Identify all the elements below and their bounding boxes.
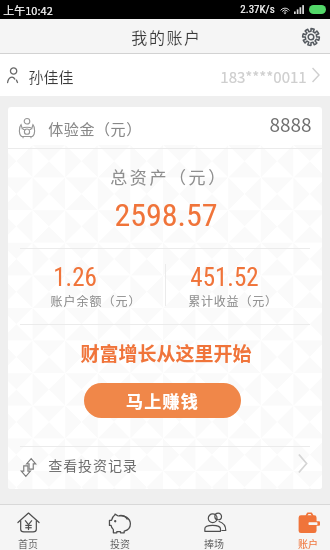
button[interactable]: 捧场 — [173, 505, 255, 550]
staticText: 财富增长从这里开始 — [80, 339, 252, 367]
button[interactable]: Settings — [292, 19, 330, 54]
button[interactable]: 查看投资记录 — [8, 446, 322, 489]
staticText: 2598.57 — [114, 196, 218, 234]
staticText: 451.52 — [190, 263, 259, 292]
staticText: 183****0011 — [220, 66, 307, 88]
staticText: 查看投资记录 — [48, 455, 138, 475]
staticText: 投资 — [110, 536, 130, 550]
staticText: 我的账户 — [131, 25, 202, 48]
staticText: 账户余额（元） — [50, 292, 142, 309]
staticText: 账户 — [298, 536, 318, 550]
staticText: 孙佳佳 — [28, 66, 74, 88]
button[interactable]: 马上赚钱 — [84, 383, 241, 418]
button[interactable]: 孙佳佳 — [0, 54, 330, 96]
staticText: 总资产（元） — [110, 164, 228, 189]
staticText: 上午10:42 — [3, 2, 53, 18]
staticText: 8888 — [269, 110, 312, 138]
staticText: 1.26 — [53, 263, 97, 292]
button[interactable]: 投资 — [79, 505, 161, 550]
button[interactable]: 体验金（元） — [8, 107, 322, 149]
staticText: 马上赚钱 — [126, 388, 199, 413]
staticText: 2.37K/s — [240, 3, 275, 16]
staticText: 捧场 — [204, 536, 224, 550]
staticText: 首页 — [18, 536, 38, 550]
staticText: 累计收益（元） — [188, 292, 278, 309]
staticText: 体验金（元） — [48, 118, 142, 140]
button[interactable]: 首页 — [0, 505, 69, 550]
button[interactable]: 账户 — [267, 505, 330, 550]
